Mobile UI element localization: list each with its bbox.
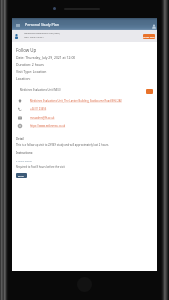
staticText: Instructions: bbox=[16, 151, 33, 155]
button[interactable]: meuadmn@fh.ac.uk bbox=[17, 114, 139, 121]
staticText: This is a follow up visit to 2XY&Y study… bbox=[16, 143, 110, 147]
staticText: meuadmn@fh.ac.uk bbox=[30, 116, 55, 120]
button[interactable]: Study Info bbox=[143, 34, 155, 39]
button[interactable]: Show on map bbox=[146, 89, 153, 94]
staticText: Duration: 2 hours bbox=[16, 62, 44, 67]
button[interactable]: Medicines Evaluations Unit (MEU) bbox=[12, 30, 157, 42]
staticText: Medicines Evaluations Unit (MEU) bbox=[24, 32, 60, 35]
button[interactable]: +44 01 23456 bbox=[17, 105, 139, 112]
button[interactable]: Medicines Evaluations Unit, The Lanton B… bbox=[17, 97, 139, 104]
staticText: Medicines Evaluations Unit (MEU) bbox=[20, 88, 61, 92]
staticText: Study Info bbox=[143, 35, 155, 38]
staticText: Follow Up bbox=[16, 47, 37, 53]
staticText: MEU Study 20/401 bbox=[24, 36, 44, 39]
staticText: https://www.estbnmeu.co.uk bbox=[30, 124, 66, 128]
staticText: Date: Thursday, July 29, 2021 at 12:00 bbox=[16, 55, 76, 60]
button[interactable]: Open navigation menu bbox=[12, 18, 157, 30]
staticText: +44 01 23456 bbox=[30, 107, 47, 111]
button[interactable]: BACK bbox=[16, 173, 27, 178]
staticText: Medicines Evaluations Unit, The Lanton B… bbox=[30, 99, 122, 103]
staticText: Location: bbox=[16, 76, 31, 81]
staticText: Personal Study Plan bbox=[25, 22, 60, 27]
staticText: Detail bbox=[16, 137, 24, 141]
staticText: Visit Type: Location bbox=[16, 69, 47, 74]
staticText: BACK bbox=[18, 174, 25, 177]
other: Account bbox=[152, 24, 156, 29]
staticText: Required to Fast 8 hours before the visi… bbox=[16, 165, 65, 169]
staticText: 8 hours before bbox=[16, 160, 32, 163]
button[interactable]: https://www.estbnmeu.co.uk bbox=[17, 122, 139, 129]
